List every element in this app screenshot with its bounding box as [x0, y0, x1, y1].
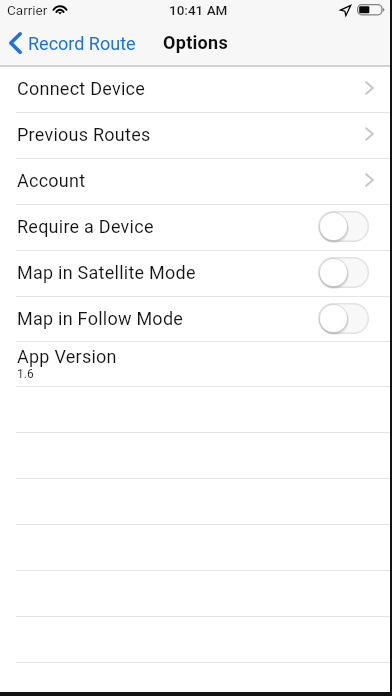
staticText: Account: [17, 170, 86, 191]
button[interactable]: Previous Routes: [0, 112, 392, 159]
button[interactable]: App Version: [0, 341, 392, 387]
button[interactable]: Connect Device: [0, 66, 392, 113]
button[interactable]: Back to Record Route: [4, 28, 144, 58]
button[interactable]: Toggle: [318, 303, 369, 334]
staticText: App Version: [17, 346, 117, 367]
staticText: 1.6: [17, 367, 34, 381]
staticText: Connect Device: [17, 78, 145, 99]
button[interactable]: Account: [0, 158, 392, 205]
staticText: Record Route: [28, 33, 136, 54]
button[interactable]: Toggle: [318, 257, 369, 288]
staticText: Require a Device: [17, 216, 154, 237]
staticText: Map in Follow Mode: [17, 308, 184, 329]
staticText: Carrier: [7, 2, 48, 18]
button[interactable]: Toggle: [318, 211, 369, 242]
staticText: 10:41 AM: [169, 2, 228, 18]
staticText: Options: [163, 32, 229, 53]
staticText: Previous Routes: [17, 124, 151, 145]
staticText: Map in Satellite Mode: [17, 262, 196, 283]
